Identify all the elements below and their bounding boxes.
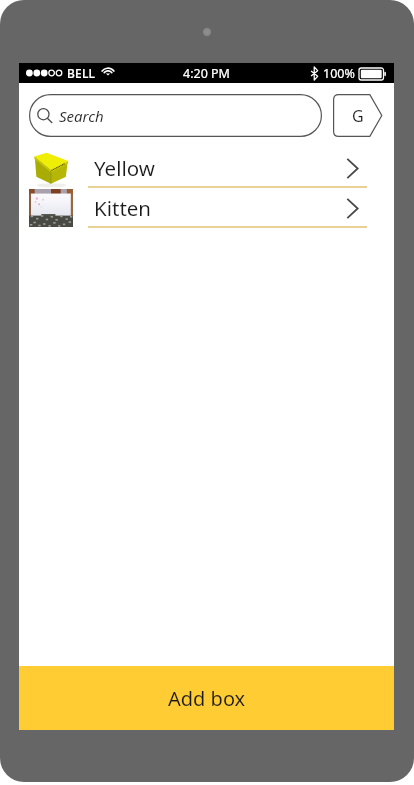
staticText: 100% — [323, 65, 355, 82]
button[interactable]: Yellow — [19, 148, 394, 188]
button[interactable]: Kitten — [19, 188, 394, 228]
button[interactable]: Search — [29, 94, 322, 137]
staticText: BELL — [67, 65, 96, 81]
staticText: Add box — [168, 685, 246, 712]
staticText: Search — [59, 106, 104, 126]
staticText: Yellow — [94, 154, 155, 182]
staticText: Kitten — [94, 194, 152, 222]
button[interactable]: Google search — [333, 94, 383, 137]
staticText: G — [352, 105, 364, 127]
staticText: 4:20 PM — [183, 65, 230, 82]
button[interactable]: Add box — [19, 666, 394, 730]
